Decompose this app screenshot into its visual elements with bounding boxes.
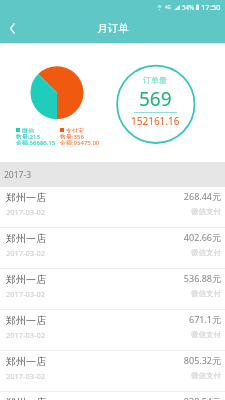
staticText: 郑州一店 bbox=[6, 314, 46, 327]
staticText: 微信支付 bbox=[191, 330, 221, 339]
button[interactable]: 郑州一店 bbox=[0, 269, 225, 310]
staticText: 671.1元 bbox=[188, 313, 221, 325]
staticText: 支付宝 bbox=[66, 127, 84, 133]
staticText: 金额:56686.15 bbox=[16, 139, 56, 145]
staticText: 536.88元 bbox=[183, 272, 221, 284]
staticText: 数量:356 bbox=[60, 133, 84, 139]
staticText: 订单量 bbox=[143, 75, 167, 85]
staticText: 569 bbox=[139, 86, 172, 112]
staticText: 4G bbox=[165, 4, 171, 10]
staticText: 2017-03-02 bbox=[6, 289, 46, 299]
staticText: 微信 bbox=[22, 127, 34, 133]
staticText: 152161.16 bbox=[131, 114, 180, 128]
staticText: 54% bbox=[182, 3, 195, 11]
staticText: 微信支付 bbox=[191, 289, 221, 298]
button[interactable]: 郑州一店 bbox=[0, 187, 225, 228]
staticText: 微信支付 bbox=[191, 248, 221, 257]
staticText: 金额:95475.00 bbox=[60, 139, 100, 145]
staticText: 微信支付 bbox=[191, 207, 221, 216]
staticText: 郑州一店 bbox=[6, 191, 46, 204]
staticText: 939.54元 bbox=[183, 395, 221, 400]
button[interactable]: 郑州一店 bbox=[0, 392, 225, 400]
staticText: 805.32元 bbox=[183, 354, 221, 366]
staticText: 数量:213 bbox=[16, 133, 40, 139]
staticText: 268.44元 bbox=[183, 190, 221, 202]
staticText: 郑州一店 bbox=[6, 273, 46, 286]
button[interactable]: Back bbox=[0, 14, 25, 43]
staticText: 402.66元 bbox=[183, 231, 221, 243]
button[interactable]: 郑州一店 bbox=[0, 310, 225, 351]
staticText: 2017-03-02 bbox=[6, 330, 46, 340]
staticText: 17:50 bbox=[201, 2, 221, 12]
button[interactable]: 郑州一店 bbox=[0, 228, 225, 269]
staticText: 郑州一店 bbox=[6, 396, 46, 400]
button[interactable]: 郑州一店 bbox=[0, 351, 225, 392]
staticText: 2017-03-02 bbox=[6, 248, 46, 258]
staticText: 2017-03-02 bbox=[6, 371, 46, 381]
staticText: 郑州一店 bbox=[6, 355, 46, 368]
staticText: 2017-03-02 bbox=[6, 207, 46, 217]
staticText: 郑州一店 bbox=[6, 232, 46, 245]
staticText: 2017-3 bbox=[4, 169, 32, 181]
staticText: 月订单 bbox=[97, 22, 129, 35]
staticText: 微信支付 bbox=[191, 371, 221, 380]
